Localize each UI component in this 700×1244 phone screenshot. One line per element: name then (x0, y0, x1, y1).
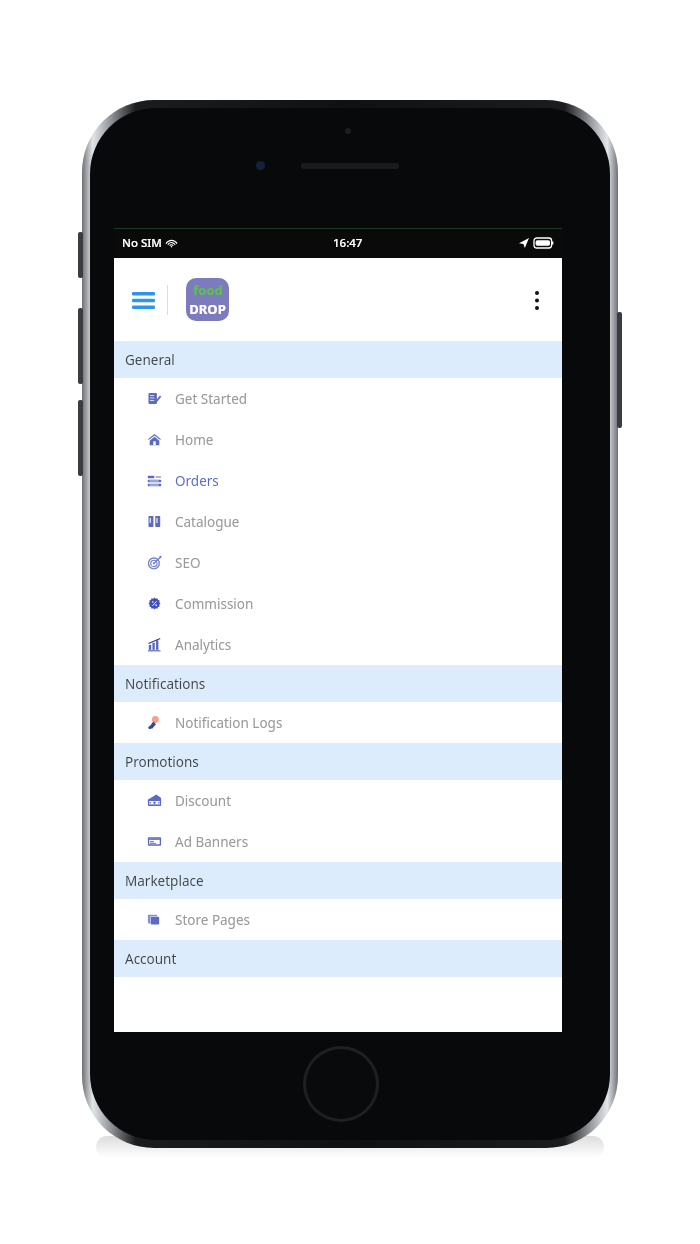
staticText: food (193, 281, 223, 299)
staticText: Marketplace (125, 872, 204, 890)
staticText: Notifications (125, 675, 206, 693)
staticText: No SIM (122, 235, 162, 251)
button[interactable]: Home (114, 419, 562, 460)
staticText: Get Started (175, 390, 248, 408)
button[interactable]: More options (518, 281, 556, 319)
staticText: Commission (175, 595, 254, 613)
staticText: Discount (175, 792, 232, 810)
staticText: General (125, 351, 175, 369)
staticText: Catalogue (175, 513, 240, 531)
staticText: 16:47 (333, 235, 363, 251)
button[interactable]: Notification Logs (114, 702, 562, 743)
button[interactable]: Ad Banners (114, 821, 562, 862)
staticText: Account (125, 950, 177, 968)
staticText: SEO (175, 554, 201, 572)
button[interactable]: Analytics (114, 624, 562, 665)
button[interactable]: foodDROP logo (186, 278, 229, 321)
button[interactable]: Get Started (114, 378, 562, 419)
button[interactable]: Store Pages (114, 899, 562, 940)
button[interactable]: Open navigation menu (126, 283, 160, 317)
staticText: Home (175, 431, 214, 449)
staticText: Orders (175, 472, 219, 490)
button[interactable]: Discount (114, 780, 562, 821)
button[interactable]: Catalogue (114, 501, 562, 542)
button[interactable]: Commission (114, 583, 562, 624)
staticText: Ad Banners (175, 833, 249, 851)
staticText: Analytics (175, 636, 232, 654)
staticText: Store Pages (175, 911, 251, 929)
staticText: Promotions (125, 753, 199, 771)
staticText: DROP (189, 300, 226, 318)
button[interactable]: SEO (114, 542, 562, 583)
button[interactable]: Orders (114, 460, 562, 501)
staticText: Notification Logs (175, 714, 283, 732)
